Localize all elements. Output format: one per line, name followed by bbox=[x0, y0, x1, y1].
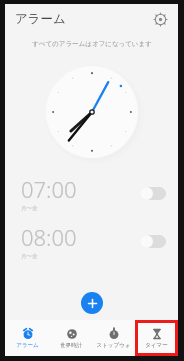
staticText: タイマー bbox=[145, 342, 168, 349]
button[interactable]: ストップウォッ… bbox=[92, 320, 135, 356]
staticText: アラーム bbox=[15, 11, 66, 27]
button[interactable]: Toggle alarm bbox=[140, 185, 166, 201]
button[interactable]: Add alarm bbox=[81, 292, 103, 314]
staticText: アラーム bbox=[16, 342, 39, 349]
staticText: 08:00 bbox=[21, 222, 77, 252]
button[interactable]: Toggle alarm bbox=[140, 233, 166, 249]
button[interactable]: 07:00 bbox=[5, 169, 178, 217]
staticText: 07:00 bbox=[21, 174, 77, 204]
staticText: 月〜金 bbox=[21, 205, 38, 212]
staticText: 世界時計 bbox=[60, 342, 82, 349]
button[interactable]: Settings bbox=[150, 9, 170, 29]
button[interactable]: タイマー bbox=[145, 320, 168, 356]
staticText: すべてのアラームはオフになっています bbox=[32, 40, 152, 48]
staticText: ストップウォッ… bbox=[92, 342, 135, 349]
button[interactable]: アラーム bbox=[16, 320, 39, 356]
button[interactable]: 世界時計 bbox=[60, 320, 82, 356]
staticText: 月〜金 bbox=[21, 253, 38, 260]
button[interactable]: 08:00 bbox=[5, 217, 178, 265]
